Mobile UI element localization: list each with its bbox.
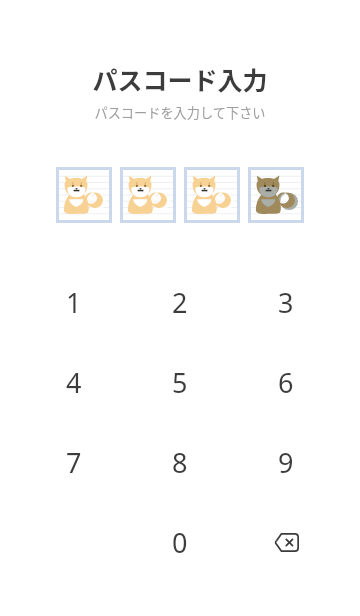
button[interactable]: Backspace bbox=[233, 502, 339, 582]
button[interactable]: 0 bbox=[127, 502, 233, 582]
staticText: 8 bbox=[172, 444, 188, 481]
staticText: 1 bbox=[66, 284, 82, 321]
staticText: 7 bbox=[66, 444, 82, 481]
staticText: 9 bbox=[278, 444, 294, 481]
button[interactable]: 3 bbox=[233, 262, 339, 342]
staticText: 4 bbox=[66, 364, 82, 401]
button[interactable]: 9 bbox=[233, 422, 339, 502]
staticText: 5 bbox=[172, 364, 188, 401]
other: Backspace bbox=[271, 527, 301, 557]
staticText: パスコードを入力して下さい bbox=[94, 103, 266, 122]
button[interactable]: 6 bbox=[233, 342, 339, 422]
button[interactable]: 8 bbox=[127, 422, 233, 502]
button[interactable]: 5 bbox=[127, 342, 233, 422]
button[interactable]: 2 bbox=[127, 262, 233, 342]
staticText: 2 bbox=[172, 284, 188, 321]
staticText: 0 bbox=[172, 524, 188, 561]
staticText: 3 bbox=[278, 284, 294, 321]
staticText: パスコード入力 bbox=[92, 61, 268, 97]
button[interactable]: 1 bbox=[21, 262, 127, 342]
button[interactable]: 7 bbox=[21, 422, 127, 502]
staticText: 6 bbox=[278, 364, 294, 401]
button[interactable]: 4 bbox=[21, 342, 127, 422]
